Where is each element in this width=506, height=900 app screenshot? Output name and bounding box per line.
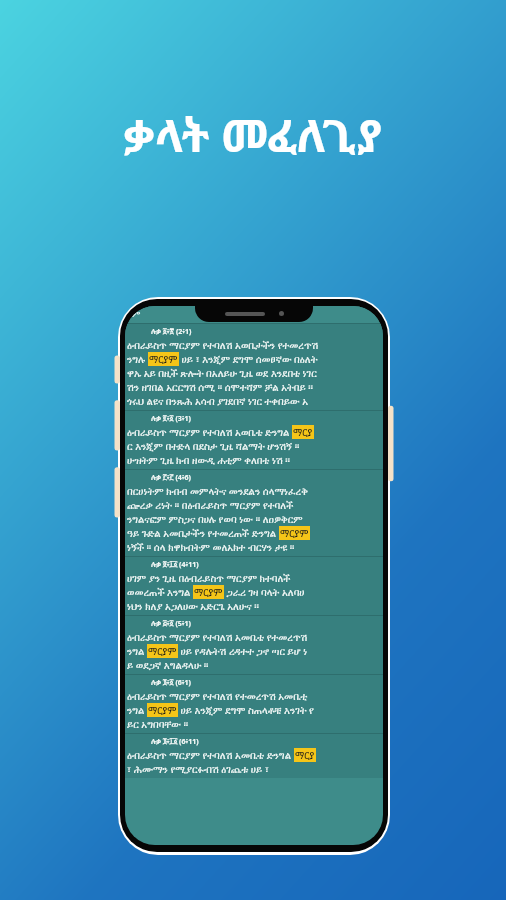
staticText: ሉቃ ፫፥፫ (4፥6) <box>151 473 191 483</box>
staticText: በርሀነትም ክብብ መምላትና መንደልን ሰላማነፈረቅ <box>127 484 308 498</box>
staticText: ሽን ዘገበል አርርግሽ ሰሚ ። ሰሞተሻም ቻል አትበይ ። <box>127 380 313 394</box>
staticText: ሉቃ ፮፥፲፩ (6፥11) <box>151 737 199 747</box>
staticText: ር እንጂም በተድላ በደስታ ጊዜ ሻልማት ሆንሽኝ ። <box>127 439 300 453</box>
staticText: ማርያም <box>148 703 177 717</box>
button[interactable]: ሉቃ ፫፥፫ (4፥6) <box>125 470 383 556</box>
staticText: ማርያም <box>194 585 223 599</box>
staticText: ሀይ ፣ እንጂም ደግሞ ሰመፀኛው በዕለት <box>179 352 318 366</box>
staticText: ም <box>132 310 141 319</box>
staticText: ዕብራይስጥ ማርያም የተባለሽ የተመረጥሽ አመቤቲ <box>127 689 308 703</box>
staticText: ዕብራይስጥ ማርያም የተባለሽ አወቤቴ ድንግል <box>127 425 292 439</box>
button[interactable]: ቃላት መፈለጊያ <box>0 104 506 165</box>
staticText: ሉቃ ፭፥፩ (5፥1) <box>151 619 191 629</box>
button[interactable]: ሉቃ ፩፥፳ (2፥1) <box>125 324 383 410</box>
staticText: ሉቃ ፪፥፩ (3፥1) <box>151 414 191 424</box>
staticText: ማርያም <box>280 526 309 540</box>
staticText: ይ ወደጋኛ እግልዳላሁ ። <box>127 658 209 672</box>
staticText: ዕብራይስጥ ማርያም የተባለሽ አመቤቴ የተመረጥሽ <box>127 630 308 644</box>
button[interactable]: ሉቃ ፬፥፲፩ (4፥11) <box>125 557 383 615</box>
staticText: ሉቃ ፮፥፩ (6፥1) <box>151 678 191 688</box>
staticText: ቃላት መፈለጊያ <box>124 104 382 165</box>
staticText: ሀይ እንጂም ደግሞ ስጠላቶቼ እንገት የ <box>178 703 314 717</box>
staticText: ነህን ክለያ አጋለሀው አድርጌ አለሁና ። <box>127 599 259 613</box>
staticText: ማርያ <box>293 425 313 439</box>
button[interactable]: ሉቃ ፪፥፩ (3፥1) <box>125 411 383 469</box>
staticText: ዓይ ጉድል አመቤታችን የተመረጠች ድንግል <box>127 526 279 540</box>
staticText: ሉቃ ፩፥፳ (2፥1) <box>151 327 192 337</box>
button[interactable]: ሉቃ ፮፥፲፩ (6፥11) <box>125 734 383 778</box>
button[interactable]: ሉቃ ፭፥፩ (5፥1) <box>125 616 383 674</box>
button[interactable]: ሉቃ ፮፥፩ (6፥1) <box>125 675 383 733</box>
staticText: ሀይ የዳሉትሽ ረዳተተ ጋኖ ጣር ይሆ ነ <box>178 644 308 658</box>
staticText: ንግልናፎም ምስጋና በሀሉ የወባ ነው ። ለዐዎቅርም <box>127 512 303 526</box>
staticText: ወመረጠች እንግል <box>127 585 193 599</box>
staticText: ጋራሪ ገዛ ባላት አለባሀ <box>224 585 305 599</box>
staticText: ጎሩህ ልዩና በንጹሕ አሳብ ያገደበኛ ነገር ተቀበይው አ <box>127 394 309 408</box>
staticText: ማርያም <box>148 644 177 658</box>
staticText: ንግል <box>127 703 147 717</box>
staticText: ይር አግበባቸው ። <box>127 717 189 731</box>
staticText: ጬረቃ ሪነት ። በዕብራይስጥ ማርያም የተባለች <box>127 498 294 512</box>
button[interactable]: ም <box>125 306 383 845</box>
staticText: ዕብራይስጥ ማርያም የተባለሽ አመቤቴ ድንግል <box>127 748 294 762</box>
staticText: ዕብራይስጥ ማርያም የተባለሽ አወቤታችን የተመረጥሽ <box>127 338 319 352</box>
staticText: ፣ ሕሙማን የሚያርፉብሽ ዕገጨቱ ሀይ ፣ <box>127 762 269 776</box>
staticText: ሀገም ያን ጊዜ በዕብራይስጥ ማርያም ክተባለች <box>127 571 291 585</box>
staticText: ነኝች ። ሰላ ክዋክብትም መለአክተ ብርሃን ታዩ ። <box>127 540 295 554</box>
staticText: ዋኡ አይ በዚች ጽሎት በአለይሁ ጊዜ ወደ እንደበቴ ነገር <box>127 366 317 380</box>
staticText: ሁዝትም ጊዜ ክብ ዘውዲ ሐቲም ቀለበቴ ነሽ ። <box>127 453 290 467</box>
staticText: ንግሉ <box>127 352 148 366</box>
staticText: ንግል <box>127 644 147 658</box>
staticText: ሉቃ ፬፥፲፩ (4፥11) <box>151 560 199 570</box>
staticText: ማርያም <box>149 352 178 366</box>
staticText: ማርያ <box>295 748 315 762</box>
